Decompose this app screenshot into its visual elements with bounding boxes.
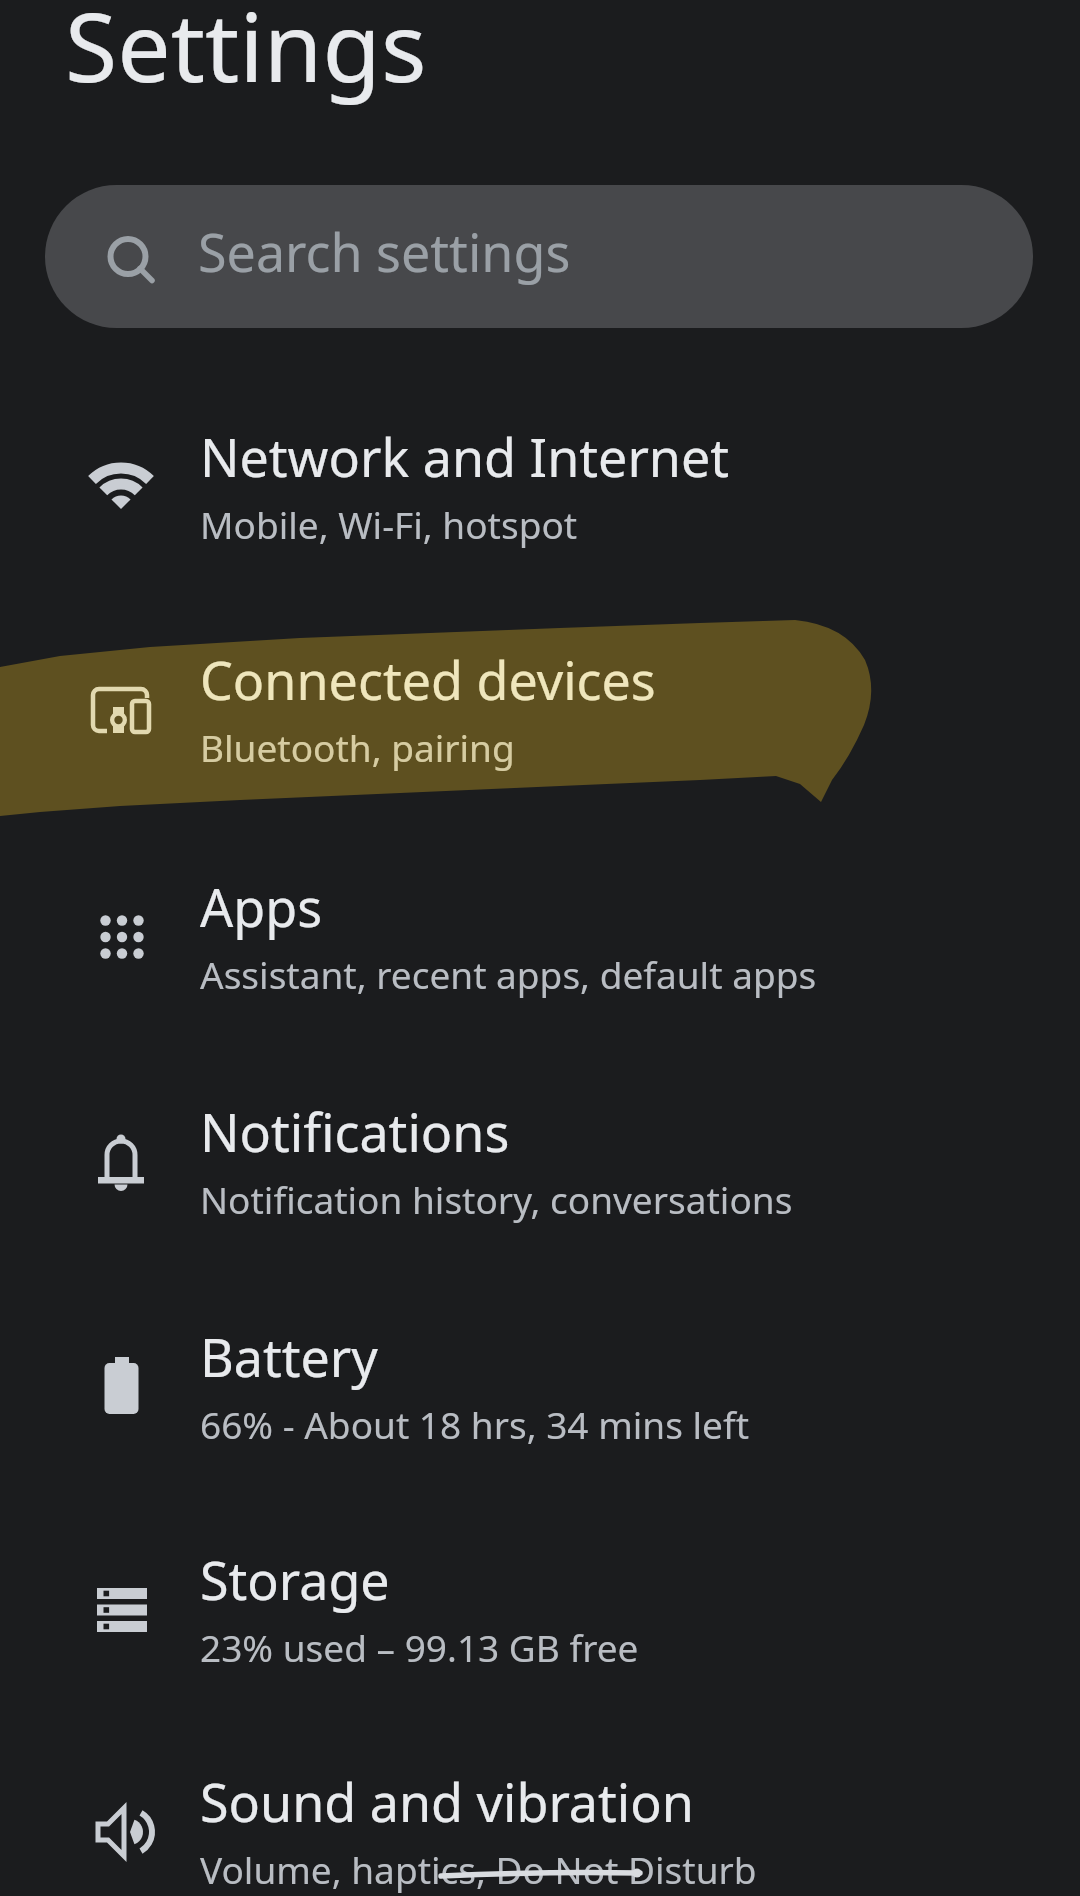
- staticText: Settings: [65, 0, 427, 109]
- staticText: Connected devices: [200, 644, 656, 715]
- button[interactable]: Apps: [0, 840, 1080, 1050]
- staticText: Battery: [200, 1321, 378, 1392]
- staticText: Volume, haptics, Do Not Disturb: [200, 1844, 757, 1894]
- button[interactable]: Connected devices: [0, 613, 1080, 823]
- button[interactable]: Sound and vibration: [0, 1735, 1080, 1896]
- button[interactable]: Battery: [0, 1290, 1080, 1500]
- staticText: Sound and vibration: [200, 1766, 694, 1837]
- staticText: Notification history, conversations: [200, 1174, 793, 1224]
- staticText: Mobile, Wi-Fi, hotspot: [200, 499, 578, 549]
- staticText: Assistant, recent apps, default apps: [200, 949, 817, 999]
- staticText: Notifications: [200, 1096, 510, 1167]
- staticText: Bluetooth, pairing: [200, 722, 515, 772]
- button[interactable]: Storage: [0, 1513, 1080, 1723]
- button[interactable]: Search settings: [45, 185, 1033, 328]
- button[interactable]: Network and Internet: [0, 390, 1080, 600]
- staticText: Network and Internet: [200, 421, 730, 492]
- staticText: Search settings: [198, 216, 571, 287]
- staticText: 23% used – 99.13 GB free: [200, 1622, 639, 1672]
- staticText: 66% - About 18 hrs, 34 mins left: [200, 1399, 750, 1449]
- staticText: Apps: [200, 871, 323, 942]
- button[interactable]: Notifications: [0, 1065, 1080, 1275]
- staticText: Storage: [200, 1544, 390, 1615]
